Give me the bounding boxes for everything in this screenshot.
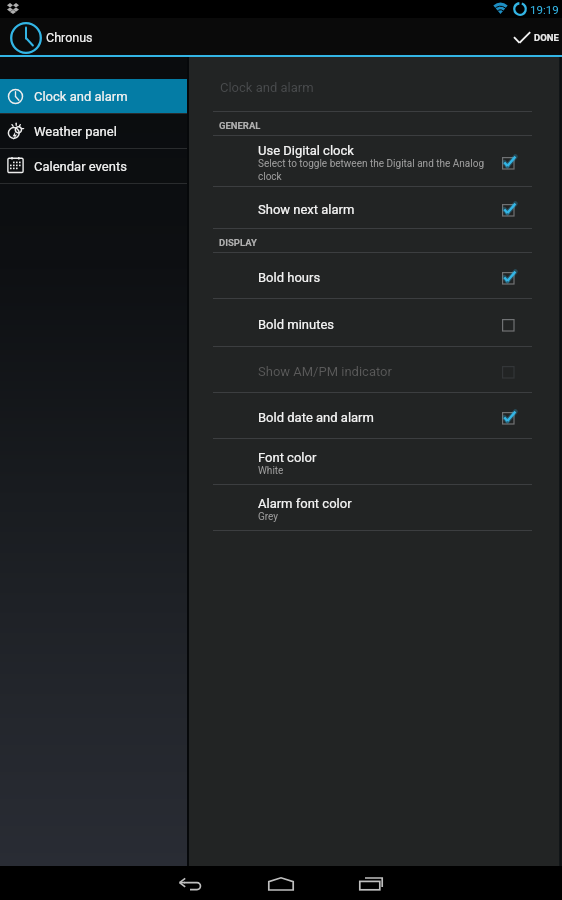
button[interactable]: Bold minutes [189, 299, 559, 346]
button[interactable]: Bold hours [189, 253, 559, 298]
staticText: Bold minutes [258, 317, 334, 332]
staticText: GENERAL [219, 120, 261, 131]
staticText: Chronus [46, 30, 93, 45]
staticText: Font color [258, 450, 317, 465]
staticText: Show next alarm [258, 202, 355, 217]
button[interactable]: Bold date and alarm [189, 393, 559, 438]
button[interactable]: Use Digital clock [189, 136, 559, 186]
button[interactable]: Home [251, 866, 311, 900]
button[interactable]: DONE [500, 18, 562, 55]
button[interactable]: Font color [189, 439, 559, 484]
button[interactable]: Back [161, 866, 221, 900]
staticText: DONE [534, 32, 559, 43]
staticText: Use Digital clock [258, 143, 354, 158]
button[interactable]: Weather panel [0, 114, 187, 148]
staticText: Clock and alarm [220, 80, 314, 95]
staticText: Show AM/PM indicator [258, 364, 392, 379]
button[interactable]: Alarm font color [189, 485, 559, 530]
staticText: White [258, 465, 284, 477]
staticText: Alarm font color [258, 496, 352, 511]
button[interactable]: Show next alarm [189, 187, 559, 228]
staticText: Select to toggle between the Digital and… [258, 158, 486, 183]
button[interactable]: Recent apps [340, 866, 400, 900]
staticText: 19:19 [530, 3, 559, 16]
staticText: Calendar events [34, 159, 127, 174]
button[interactable]: Clock and alarm [0, 79, 187, 113]
staticText: Grey [258, 511, 279, 523]
staticText: Bold date and alarm [258, 410, 374, 425]
button[interactable]: Show AM/PM indicator [189, 347, 559, 392]
button[interactable]: Calendar events [0, 149, 187, 183]
other: Dropbox [7, 3, 19, 14]
staticText: DISPLAY [219, 237, 257, 248]
staticText: Weather panel [34, 124, 117, 139]
staticText: Clock and alarm [34, 89, 128, 104]
staticText: Bold hours [258, 270, 321, 285]
